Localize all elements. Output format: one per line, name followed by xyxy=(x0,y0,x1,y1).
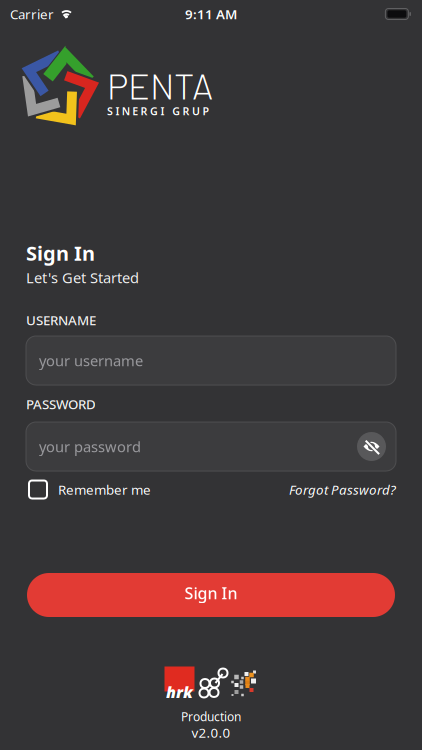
staticText: G xyxy=(150,104,158,118)
staticText: v2.0.0 xyxy=(191,724,230,741)
button[interactable]: Show password xyxy=(357,432,386,461)
staticText: P xyxy=(202,104,209,118)
staticText: Let's Get Started xyxy=(26,268,139,287)
staticText: Sign In xyxy=(26,240,95,266)
button[interactable]: Sign In xyxy=(27,573,395,617)
staticText: Forgot Password? xyxy=(289,481,396,498)
staticText: PASSWORD xyxy=(26,395,96,413)
staticText: G xyxy=(172,104,180,118)
staticText: R xyxy=(183,104,190,118)
staticText: Carrier xyxy=(10,5,54,23)
staticText: N xyxy=(122,104,130,118)
staticText: Production xyxy=(181,708,241,724)
button[interactable]: Remember me xyxy=(29,480,151,498)
staticText: E xyxy=(132,104,138,118)
staticText: I xyxy=(115,104,119,118)
staticText: your username xyxy=(39,351,143,370)
staticText: USERNAME xyxy=(26,311,96,329)
staticText: S xyxy=(107,104,113,118)
staticText: 9:11 AM xyxy=(185,5,237,23)
staticText: your password xyxy=(39,437,141,456)
staticText: Remember me xyxy=(58,481,151,498)
staticText: I xyxy=(160,104,164,118)
staticText: hrk xyxy=(166,681,193,703)
staticText: R xyxy=(141,104,148,118)
staticText: PENTA xyxy=(107,63,213,107)
staticText: U xyxy=(192,104,200,118)
button[interactable]: Forgot Password? xyxy=(289,481,396,498)
staticText: Sign In xyxy=(184,582,237,604)
